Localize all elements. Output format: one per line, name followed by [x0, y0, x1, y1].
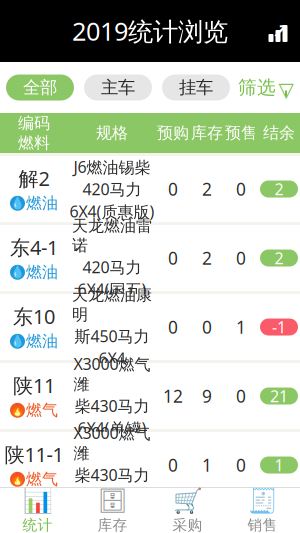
staticText: 🗄 — [97, 487, 127, 514]
staticText: 💧 — [10, 334, 25, 348]
staticText: 燃气 — [26, 469, 58, 489]
staticText: 0 — [236, 453, 246, 476]
staticText: 420马力 — [82, 178, 141, 200]
staticText: 0 — [168, 453, 178, 476]
staticText: 天龙燃油雷诺 — [72, 216, 152, 255]
staticText: ↗ — [272, 20, 289, 43]
staticText: 天龙燃油康明 — [72, 285, 152, 324]
staticText: 0 — [168, 315, 178, 338]
staticText: -1 — [272, 316, 286, 338]
staticText: 0 — [236, 246, 246, 269]
button[interactable]: 东10 — [0, 294, 300, 360]
staticText: 21 — [270, 385, 288, 407]
staticText: 📊 — [22, 487, 52, 514]
staticText: 燃料 — [18, 133, 50, 153]
staticText: 9 — [202, 384, 212, 407]
staticText: 燃气 — [26, 400, 58, 420]
button[interactable]: 🗄 — [75, 488, 150, 532]
staticText: 库存 — [97, 516, 127, 533]
staticText: 柴430马力 — [74, 395, 149, 416]
staticText: 销售 — [247, 516, 277, 533]
staticText: J6燃油锡柴 — [73, 156, 150, 177]
staticText: 6X4(单罐) — [77, 486, 146, 508]
staticText: 🛒 — [172, 487, 202, 514]
staticText: 2019统计浏览 — [72, 14, 228, 48]
staticText: 💧 — [10, 196, 25, 210]
staticText: ▽ — [278, 78, 293, 101]
staticText: 2 — [274, 178, 283, 200]
staticText: 结余 — [263, 123, 295, 143]
staticText: 1 — [236, 315, 246, 338]
staticText: 0 — [236, 177, 246, 200]
button[interactable]: 东4-1 — [0, 225, 300, 291]
staticText: 12 — [163, 384, 183, 407]
button[interactable]: 筛选 — [238, 72, 294, 102]
staticText: 6X4(国五) — [77, 279, 146, 300]
staticText: 预购 — [157, 123, 189, 143]
staticText: 燃油 — [26, 193, 58, 213]
staticText: 陕11 — [13, 372, 55, 398]
staticText: 统计 — [22, 516, 52, 533]
staticText: 1 — [202, 453, 212, 476]
button[interactable]: 🛒 — [150, 488, 225, 532]
button[interactable]: 解2 — [0, 156, 300, 222]
staticText: 陕11-1 — [4, 441, 63, 467]
staticText: 燃油 — [26, 331, 58, 351]
staticText: 主车 — [101, 77, 135, 98]
staticText: X3000燃气潍 — [73, 353, 150, 394]
staticText: 🔥 — [10, 403, 25, 417]
staticText: 1 — [274, 454, 283, 476]
staticText: X3000燃气潍 — [73, 422, 150, 463]
staticText: 编码 — [18, 113, 50, 133]
staticText: 采购 — [172, 516, 202, 533]
staticText: 0 — [168, 246, 178, 269]
staticText: 420马力 — [82, 256, 141, 278]
button[interactable]: 陕11-1 — [0, 432, 300, 498]
staticText: 6X4 — [98, 348, 125, 369]
button[interactable]: 挂车 — [162, 74, 230, 100]
staticText: 全部 — [23, 77, 57, 98]
staticText: 规格 — [96, 123, 128, 143]
staticText: 东4-1 — [10, 234, 58, 260]
staticText: 0 — [168, 177, 178, 200]
staticText: 柴430马力 — [74, 464, 149, 485]
button[interactable]: 统计图表 — [256, 9, 300, 53]
staticText: 🔥 — [10, 472, 25, 486]
button[interactable]: 全部 — [6, 74, 74, 100]
staticText: 库存 — [191, 123, 223, 143]
staticText: 燃油 — [26, 262, 58, 282]
staticText: 2 — [202, 177, 212, 200]
staticText: 6X4(质惠版) — [69, 201, 154, 222]
button[interactable]: 🧾 — [225, 488, 300, 532]
staticText: 东10 — [13, 303, 55, 329]
staticText: 0 — [236, 384, 246, 407]
staticText: 🧾 — [247, 487, 277, 514]
button[interactable]: 陕11 — [0, 363, 300, 429]
staticText: 挂车 — [179, 77, 213, 98]
staticText: 解2 — [18, 165, 49, 191]
staticText: 斯450马力 — [74, 325, 149, 347]
staticText: 筛选 — [238, 76, 276, 99]
staticText: 2 — [274, 247, 283, 269]
staticText: 💧 — [10, 265, 25, 279]
button[interactable]: 📊 — [0, 488, 75, 532]
staticText: 预售 — [225, 123, 257, 143]
button[interactable]: 主车 — [84, 74, 152, 100]
staticText: 0 — [202, 315, 212, 338]
staticText: 6X4(单罐) — [77, 417, 146, 439]
staticText: 2 — [202, 246, 212, 269]
